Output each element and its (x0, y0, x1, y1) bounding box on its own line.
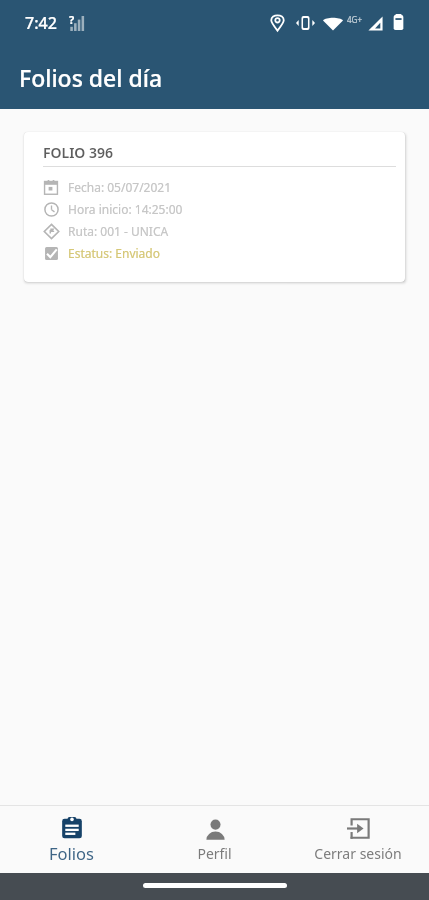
staticText: Perfil (197, 844, 232, 863)
staticText: 7:42 (25, 12, 57, 34)
staticText: ? (69, 12, 75, 27)
staticText: Folios del día (19, 62, 163, 93)
staticText: Ruta: 001 - UNICA (68, 223, 169, 239)
staticText: 4G+ (347, 14, 362, 25)
button[interactable]: FOLIO 396 (24, 132, 405, 282)
staticText: Folios (49, 842, 94, 861)
staticText: Fecha: 05/07/2021 (68, 179, 172, 195)
button[interactable]: Folios (0, 806, 143, 873)
staticText: Hora inicio: 14:25:00 (68, 201, 183, 217)
button[interactable]: Cerrar sesión (286, 806, 429, 873)
staticText: Estatus: Enviado (68, 245, 160, 261)
staticText: FOLIO 396 (43, 143, 114, 162)
button[interactable]: Perfil (143, 806, 286, 873)
staticText: Cerrar sesión (314, 844, 402, 863)
